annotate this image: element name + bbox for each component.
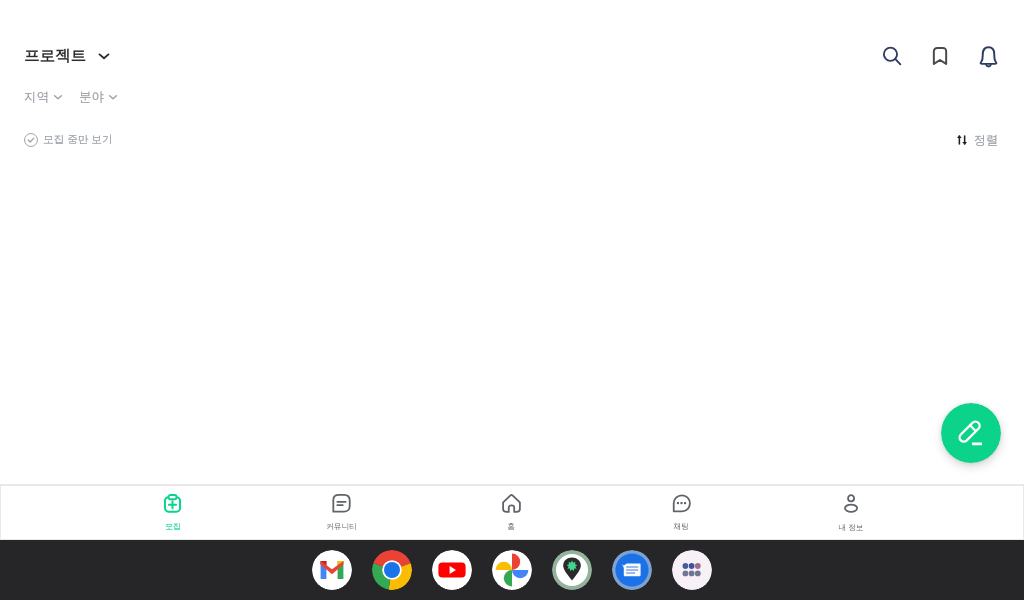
button[interactable]: 정렬: [956, 124, 999, 155]
button[interactable]: YouTube: [432, 550, 472, 590]
button[interactable]: 모집: [88, 489, 257, 536]
staticText: 분야: [79, 89, 104, 105]
button[interactable]: 지역: [24, 87, 64, 107]
button[interactable]: 분야: [79, 87, 119, 107]
button[interactable]: 모집 중만 보기: [24, 124, 113, 155]
button[interactable]: Photos: [492, 550, 532, 590]
button[interactable]: Bookmarks: [916, 32, 964, 80]
button[interactable]: Write: [941, 403, 1001, 463]
button[interactable]: 프로젝트: [24, 42, 112, 70]
button[interactable]: All apps: [672, 550, 712, 590]
staticText: 모집: [165, 522, 181, 532]
staticText: 홈: [507, 522, 515, 532]
button[interactable]: Maps: [552, 550, 592, 590]
button[interactable]: 커뮤니티: [257, 489, 426, 536]
staticText: 정렬: [974, 132, 999, 147]
button[interactable]: 채팅: [596, 489, 766, 536]
button[interactable]: Notifications: [964, 32, 1012, 80]
staticText: 내 정보: [838, 522, 864, 533]
staticText: 커뮤니티: [326, 522, 357, 532]
button[interactable]: Gmail: [312, 550, 352, 590]
button[interactable]: Messages: [612, 550, 652, 590]
button[interactable]: Search: [868, 32, 916, 80]
staticText: 지역: [24, 89, 49, 105]
staticText: 프로젝트: [24, 46, 86, 66]
staticText: 채팅: [673, 522, 689, 532]
button[interactable]: Chrome: [372, 550, 412, 590]
staticText: 모집 중만 보기: [43, 132, 113, 147]
button[interactable]: 홈: [426, 489, 596, 536]
button[interactable]: 내 정보: [766, 489, 936, 537]
